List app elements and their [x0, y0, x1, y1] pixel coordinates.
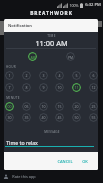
button[interactable]: 40	[39, 113, 48, 122]
staticText: 10	[57, 85, 62, 90]
button[interactable]: 1	[5, 71, 14, 80]
staticText: 1	[8, 73, 11, 78]
button[interactable]: 12	[89, 83, 98, 92]
button[interactable]: 5	[72, 71, 81, 80]
staticText: 05	[24, 104, 29, 109]
button[interactable]: OK	[81, 158, 89, 165]
button[interactable]: 35	[22, 113, 31, 122]
staticText: 55	[91, 115, 96, 120]
staticText: 6:32 PM	[85, 2, 101, 8]
staticText: 30	[7, 115, 12, 120]
button[interactable]: 30	[5, 113, 14, 122]
staticText: 5	[75, 73, 78, 78]
staticText: 4	[58, 73, 61, 78]
staticText: AM	[30, 55, 36, 59]
staticText: BREATHWORK	[30, 10, 73, 17]
staticText: 50	[74, 115, 79, 120]
staticText: 25	[91, 104, 96, 109]
staticText: 7	[8, 85, 11, 90]
button[interactable]: 3	[39, 71, 48, 80]
button[interactable]: 6	[89, 71, 98, 80]
button[interactable]: 45	[55, 113, 64, 122]
button[interactable]: 00	[5, 102, 14, 111]
button[interactable]: 10	[39, 102, 48, 111]
button[interactable]: Rate this app	[0, 170, 103, 183]
staticText: MINUTE	[6, 96, 20, 100]
staticText: HOUR	[6, 65, 16, 69]
staticText: 6	[92, 73, 95, 78]
button[interactable]: 15	[55, 102, 64, 111]
button[interactable]: 2	[22, 71, 31, 80]
staticText: 11	[74, 85, 79, 90]
staticText: 10	[41, 104, 46, 109]
staticText: Time to relax	[6, 139, 38, 146]
button[interactable]: 11	[72, 83, 81, 92]
staticText: 20	[74, 104, 79, 109]
button[interactable]: PM	[66, 52, 75, 61]
staticText: 45	[57, 115, 62, 120]
staticText: 100%	[69, 3, 79, 8]
button[interactable]: CANCEL	[56, 158, 74, 165]
button[interactable]: 9	[39, 83, 48, 92]
staticText: 2	[25, 73, 28, 78]
button[interactable]: 55	[89, 113, 98, 122]
staticText: 11:00 AM	[35, 38, 68, 48]
staticText: 12	[91, 85, 96, 90]
staticText: 00	[7, 104, 12, 109]
staticText: 35	[24, 115, 29, 120]
staticText: 9	[42, 85, 45, 90]
staticText: MESSAGE	[44, 130, 60, 134]
staticText: PM	[68, 55, 73, 59]
staticText: OK	[82, 159, 88, 164]
button[interactable]: 4	[55, 71, 64, 80]
staticText: 3	[42, 73, 45, 78]
button[interactable]: 10	[55, 83, 64, 92]
staticText: CANCEL	[57, 159, 73, 164]
button[interactable]: 7	[5, 83, 14, 92]
button[interactable]: 8	[22, 83, 31, 92]
button[interactable]: 20	[72, 102, 81, 111]
button[interactable]: 05	[22, 102, 31, 111]
staticText: 40	[41, 115, 46, 120]
staticText: Rate this app	[12, 174, 36, 179]
staticText: 8	[25, 85, 28, 90]
staticText: TIME	[47, 34, 56, 38]
button[interactable]: 50	[72, 113, 81, 122]
staticText: 15	[57, 104, 62, 109]
button[interactable]: 25	[89, 102, 98, 111]
other: Rate this app	[3, 174, 9, 180]
staticText: Notification	[8, 23, 32, 28]
button[interactable]: AM	[28, 52, 37, 61]
